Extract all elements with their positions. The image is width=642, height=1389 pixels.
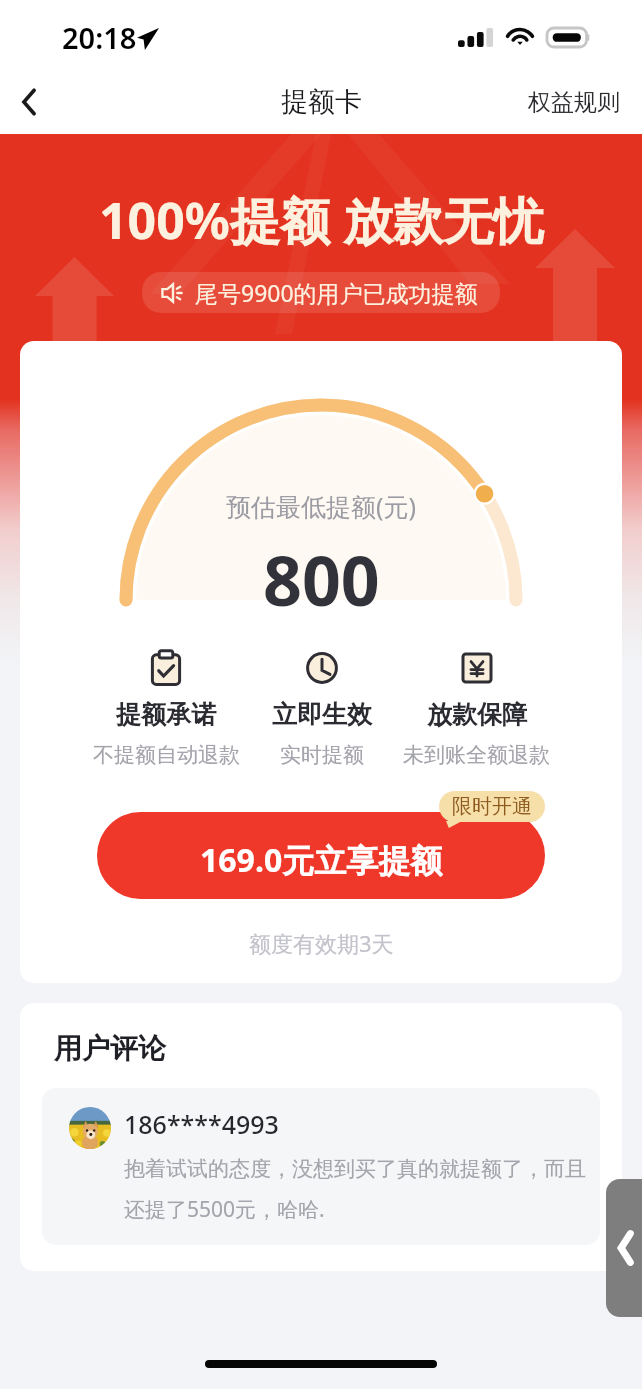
- button[interactable]: Back: [0, 73, 58, 131]
- button[interactable]: 169.0元立享提额: [97, 812, 545, 899]
- staticText: 实时提额: [280, 742, 364, 768]
- staticText: 提额承诺: [116, 699, 216, 730]
- staticText: 100%提额 放款无忧: [99, 186, 543, 254]
- button[interactable]: Collapse panel: [606, 1179, 642, 1317]
- staticText: 186****4993: [124, 1107, 279, 1141]
- staticText: 用户评论: [54, 1031, 166, 1066]
- staticText: 169.0元立享提额: [200, 838, 443, 882]
- staticText: 尾号9900的用户已成功提额: [195, 277, 478, 308]
- staticText: 20:18: [62, 18, 137, 57]
- staticText: 额度有效期3天: [249, 928, 394, 958]
- staticText: 预估最低提额(元): [226, 489, 417, 523]
- staticText: 抱着试试的态度，没想到买了真的就提额了，而且还提了5500元，哈哈.: [124, 1156, 594, 1223]
- staticText: 提额卡: [281, 85, 362, 119]
- staticText: 权益规则: [528, 88, 620, 117]
- staticText: 未到账全额退款: [403, 742, 550, 768]
- staticText: 不提额自动退款: [93, 742, 240, 768]
- staticText: 限时开通: [452, 794, 532, 819]
- staticText: 放款保障: [427, 699, 527, 730]
- staticText: 800: [263, 533, 380, 626]
- button[interactable]: 权益规则: [518, 88, 642, 117]
- staticText: 立即生效: [272, 699, 372, 730]
